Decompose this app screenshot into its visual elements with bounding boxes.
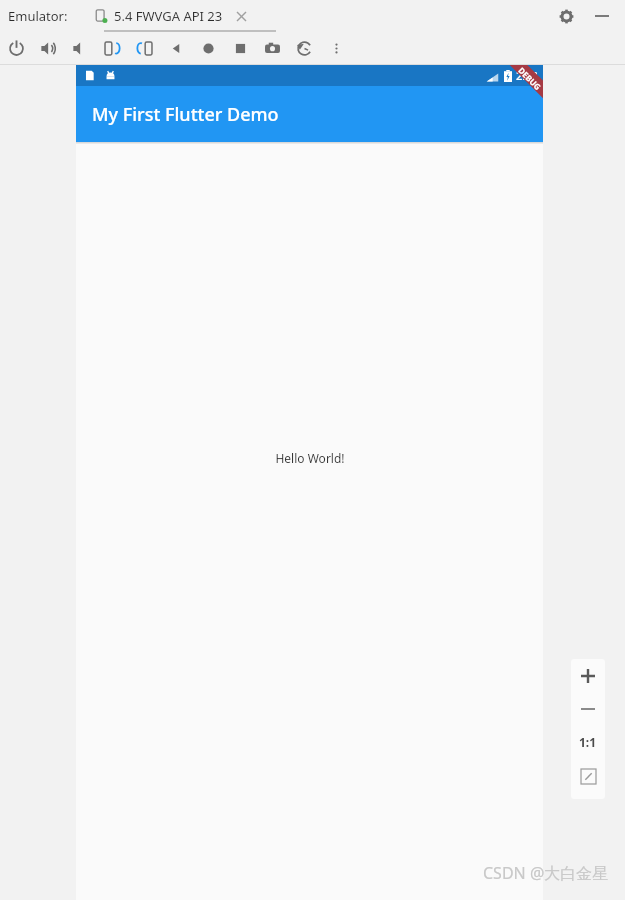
staticText: DEBUG — [516, 65, 544, 92]
staticText: CSDN @大白金星 — [483, 862, 609, 884]
button[interactable]: Zoom out — [571, 693, 605, 725]
button[interactable]: Zoom in — [571, 659, 605, 693]
staticText: 1:1 — [579, 734, 597, 750]
staticText: Hello World! — [275, 450, 345, 466]
button[interactable]: Rotate right — [128, 32, 160, 64]
button[interactable]: Close tab — [233, 8, 249, 24]
button[interactable]: History — [288, 32, 320, 64]
staticText: 5.4 FWVGA API 23 — [114, 7, 223, 25]
button[interactable]: 1:1 — [571, 725, 605, 759]
button[interactable]: 5.4 FWVGA API 23 — [88, 0, 255, 32]
button[interactable]: Settings — [551, 1, 581, 31]
button[interactable]: Power — [0, 32, 32, 64]
button[interactable]: Overview — [224, 32, 256, 64]
button[interactable]: Minimize — [587, 1, 617, 31]
button[interactable]: Volume up — [32, 32, 64, 64]
button[interactable]: Screenshot — [256, 32, 288, 64]
button[interactable]: Home — [192, 32, 224, 64]
button[interactable]: More — [320, 32, 352, 64]
staticText: Emulator: — [8, 7, 68, 25]
button[interactable]: Fit to screen — [571, 759, 605, 793]
button[interactable]: Volume down — [64, 32, 96, 64]
button[interactable]: Rotate left — [96, 32, 128, 64]
staticText: 2:43 — [516, 68, 538, 83]
button[interactable]: Back — [160, 32, 192, 64]
staticText: My First Flutter Demo — [92, 102, 279, 127]
